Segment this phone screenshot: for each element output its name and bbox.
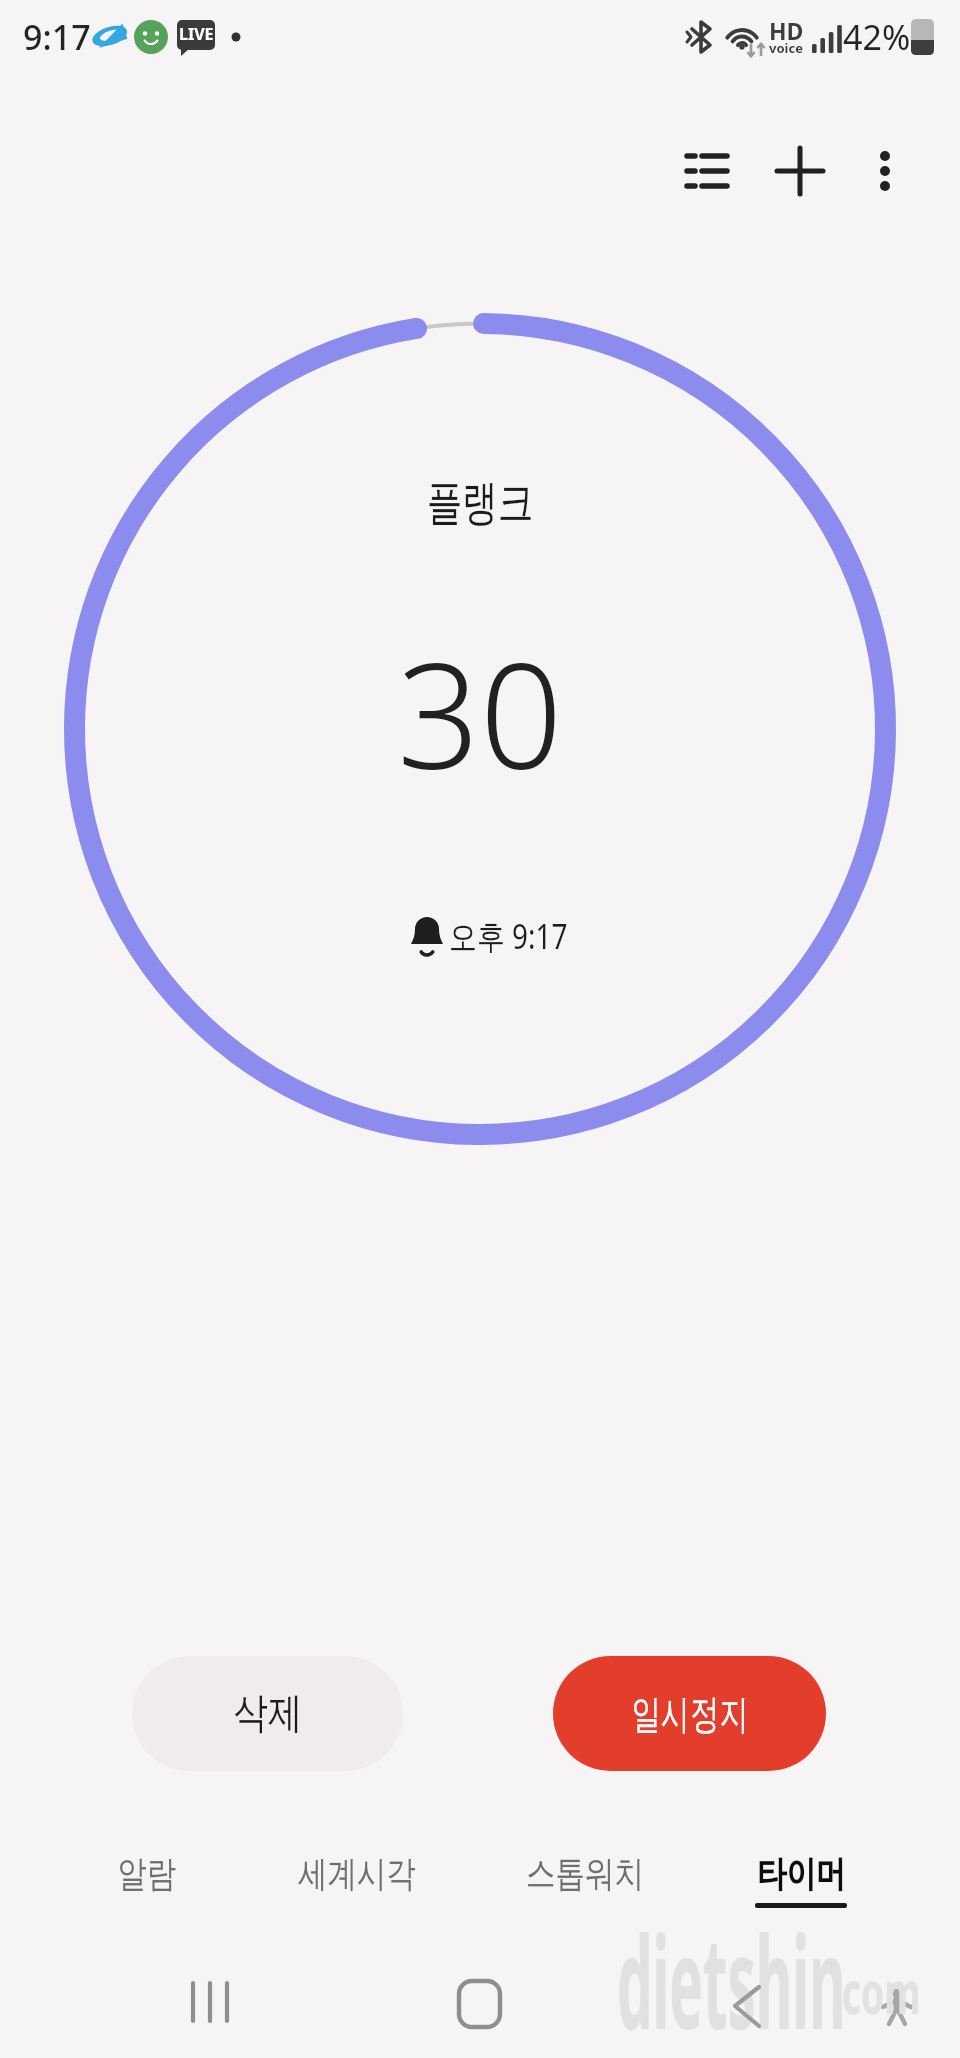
- button[interactable]: 삭제: [132, 1656, 403, 1771]
- button[interactable]: 타이머: [711, 1833, 891, 1913]
- button[interactable]: [420, 1962, 540, 2048]
- button[interactable]: [857, 143, 913, 199]
- staticText: 9:17: [23, 14, 91, 60]
- staticText: 스톱워치: [526, 1851, 644, 1896]
- button[interactable]: [677, 143, 733, 199]
- staticText: .com: [831, 1950, 921, 2030]
- button[interactable]: 알람: [57, 1833, 237, 1913]
- button[interactable]: [687, 1962, 807, 2048]
- button[interactable]: 일시정지: [553, 1656, 826, 1771]
- staticText: 일시정지: [632, 1689, 748, 1739]
- staticText: 삭제: [234, 1687, 302, 1740]
- staticText: 플랭크: [427, 473, 533, 533]
- button[interactable]: [772, 143, 828, 199]
- staticText: voice: [769, 39, 803, 57]
- staticText: 세계시각: [298, 1851, 416, 1896]
- staticText: LIVE: [179, 23, 214, 45]
- staticText: 타이머: [757, 1851, 845, 1896]
- staticText: 30: [397, 614, 563, 811]
- button[interactable]: [150, 1962, 270, 2048]
- button[interactable]: 세계시각: [267, 1833, 447, 1913]
- staticText: dietshin: [617, 1892, 846, 2052]
- staticText: 42%: [843, 14, 911, 60]
- staticText: 오후 9:17: [449, 913, 568, 959]
- staticText: HD: [769, 15, 804, 45]
- staticText: 알람: [117, 1851, 176, 1896]
- button[interactable]: 스톱워치: [495, 1833, 675, 1913]
